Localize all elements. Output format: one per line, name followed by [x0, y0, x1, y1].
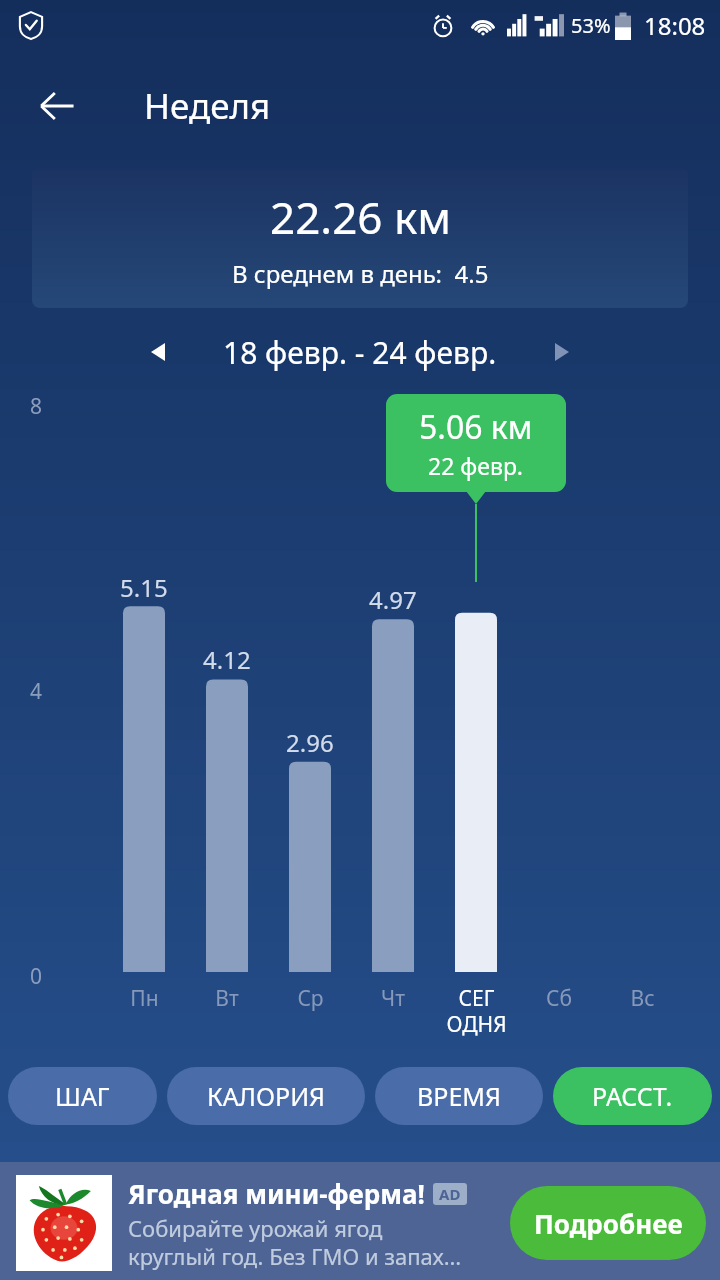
staticText: 22 февр. — [428, 450, 524, 481]
staticText: 4 — [30, 677, 43, 706]
button[interactable]: Ягодная мини-ферма! — [0, 1162, 720, 1280]
button[interactable]: Back — [26, 75, 88, 137]
button[interactable]: Next week — [536, 326, 588, 378]
staticText: 4.12 — [203, 643, 251, 676]
staticText: В среднем в день: 4.5 — [232, 257, 489, 290]
staticText: 0 — [30, 962, 43, 991]
staticText: РАССТ. — [592, 1079, 673, 1113]
staticText: Чт — [381, 984, 405, 1013]
button[interactable]: Подробнее — [510, 1186, 706, 1260]
button[interactable]: ШАГ — [8, 1067, 157, 1125]
button[interactable]: 22.26 км — [32, 168, 688, 308]
staticText: AD — [439, 1184, 461, 1204]
staticText: 2.96 — [286, 726, 334, 759]
staticText: КАЛОРИЯ — [207, 1079, 326, 1113]
button[interactable]: 5.06 км — [386, 394, 566, 492]
staticText: 5.15 — [120, 571, 168, 604]
staticText: Ср — [297, 984, 324, 1013]
staticText: СЕГ ОДНЯ — [446, 984, 507, 1039]
staticText: Подробнее — [534, 1206, 683, 1241]
staticText: 22.26 км — [270, 187, 452, 247]
staticText: Ягодная мини-ферма! — [128, 1176, 425, 1211]
staticText: ВРЕМЯ — [417, 1079, 501, 1113]
staticText: Вт — [215, 984, 239, 1013]
staticText: 8 — [30, 392, 43, 421]
staticText: Вс — [630, 984, 655, 1013]
button[interactable]: ВРЕМЯ — [375, 1067, 543, 1125]
staticText: 18:08 — [644, 9, 706, 42]
staticText: Пн — [130, 984, 159, 1013]
staticText: Сб — [546, 984, 572, 1013]
staticText: 53% — [571, 12, 611, 39]
staticText: Неделя — [144, 82, 271, 130]
button[interactable]: Previous week — [132, 326, 184, 378]
button[interactable]: РАССТ. — [553, 1067, 712, 1125]
button[interactable]: КАЛОРИЯ — [167, 1067, 365, 1125]
staticText: 18 февр. - 24 февр. — [223, 332, 497, 373]
staticText: ШАГ — [55, 1079, 110, 1113]
staticText: 5.06 км — [419, 405, 533, 449]
staticText: Собирайте урожай ягод круглый год. Без Г… — [128, 1213, 462, 1271]
staticText: 4.97 — [369, 583, 417, 616]
